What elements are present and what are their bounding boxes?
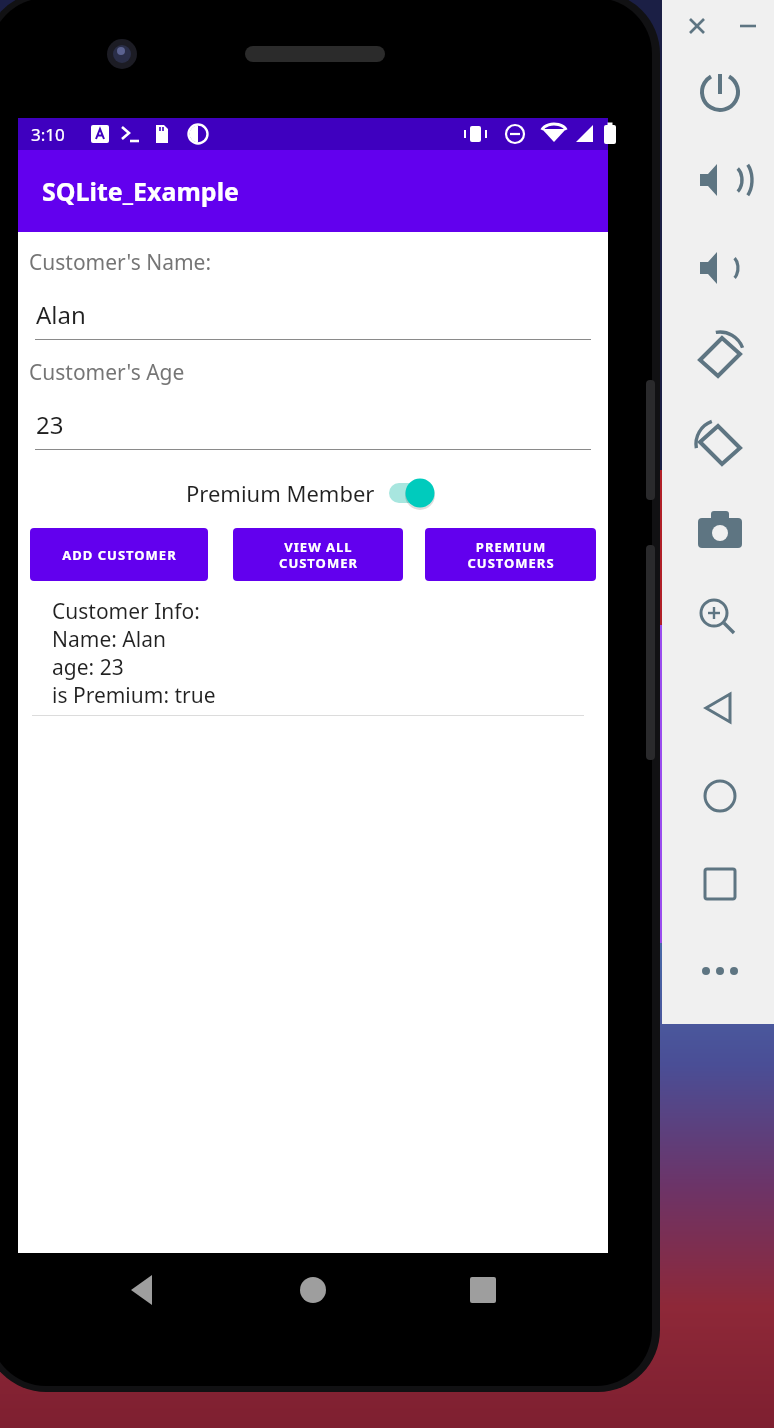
staticText: SQLite_Example xyxy=(42,174,240,208)
staticText: VIEW ALL CUSTOMER xyxy=(279,538,358,571)
button[interactable]: Rotate left xyxy=(692,332,748,380)
staticText: Customer's Age xyxy=(29,358,185,387)
staticText: 3:10 xyxy=(31,123,65,146)
button[interactable]: 23 xyxy=(18,408,608,450)
button[interactable]: More xyxy=(692,947,748,995)
staticText: Customer Info: Name: Alan age: 23 is Pre… xyxy=(52,597,216,709)
button[interactable]: Home xyxy=(692,772,748,820)
button[interactable]: Close xyxy=(692,2,748,50)
staticText: PREMIUM CUSTOMERS xyxy=(467,538,555,571)
button[interactable]: Rotate right xyxy=(692,420,748,468)
button[interactable]: Alan xyxy=(18,298,608,340)
staticText: Customer's Name: xyxy=(29,248,212,277)
button[interactable]: VIEW ALL CUSTOMER xyxy=(233,528,403,581)
button[interactable]: Zoom xyxy=(692,596,748,644)
staticText: ADD CUSTOMER xyxy=(62,546,177,564)
button[interactable]: Back xyxy=(692,684,748,732)
button[interactable]: Screenshot xyxy=(692,507,748,555)
button[interactable]: PREMIUM CUSTOMERS xyxy=(425,528,596,581)
staticText: Alan xyxy=(36,298,86,331)
button[interactable]: Premium Member toggle xyxy=(389,476,441,510)
button[interactable]: Recents xyxy=(692,860,748,908)
staticText: Premium Member xyxy=(186,478,375,508)
button[interactable]: ADD CUSTOMER xyxy=(30,528,208,581)
button[interactable]: Volume down xyxy=(692,244,748,292)
staticText: 23 xyxy=(36,408,64,441)
button[interactable]: Power xyxy=(692,68,748,116)
button[interactable]: Volume up xyxy=(692,156,748,204)
